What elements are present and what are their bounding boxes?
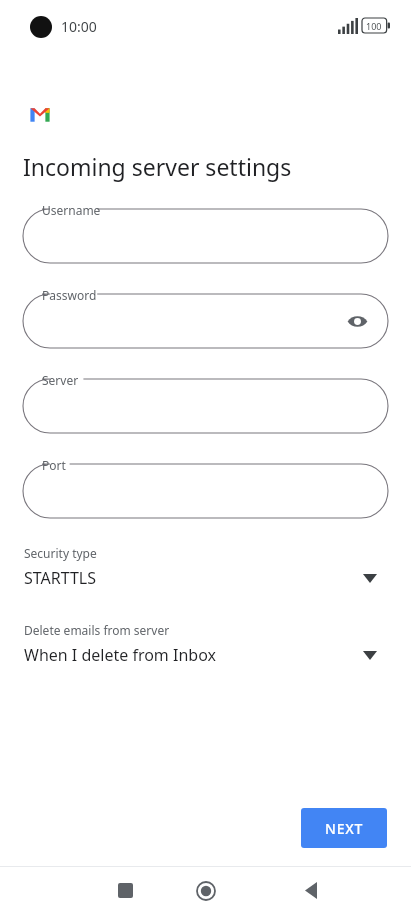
button[interactable]: Delete emails from server	[0, 622, 411, 670]
button[interactable]: Password	[23, 294, 388, 348]
button[interactable]: Recent apps	[82, 867, 168, 914]
staticText: When I delete from Inbox	[24, 644, 216, 666]
staticText: 10:00	[61, 17, 97, 36]
staticText: Delete emails from server	[24, 622, 170, 638]
staticText: Password	[42, 287, 97, 303]
button[interactable]: Back	[268, 867, 354, 914]
button[interactable]: NEXT	[301, 808, 387, 848]
staticText: Security type	[24, 545, 97, 561]
button[interactable]: Server	[23, 379, 388, 433]
staticText: Port	[42, 457, 66, 473]
button[interactable]: Home	[163, 867, 249, 914]
button[interactable]: Username	[23, 209, 388, 263]
staticText: STARTTLS	[24, 567, 97, 589]
button[interactable]: Port	[23, 464, 388, 518]
staticText: NEXT	[325, 819, 364, 838]
button[interactable]: Security type	[0, 545, 411, 593]
staticText: Server	[42, 372, 79, 388]
button[interactable]: Show password	[340, 304, 374, 338]
staticText: Username	[42, 202, 101, 218]
staticText: Incoming server settings	[23, 151, 292, 182]
staticText: 100	[366, 20, 382, 32]
